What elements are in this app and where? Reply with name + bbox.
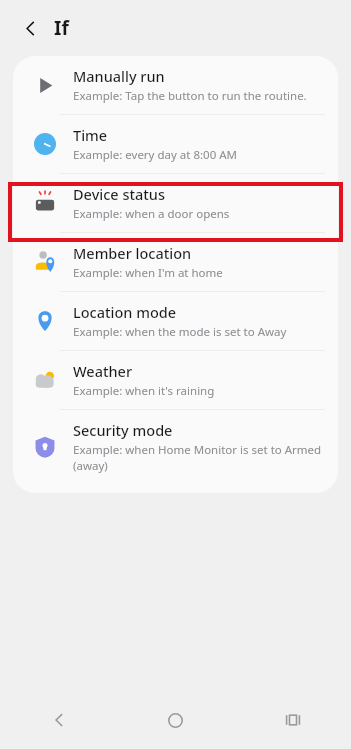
button[interactable]: Recents: [234, 691, 351, 749]
button[interactable]: Manually run: [13, 56, 338, 114]
staticText: Example: Tap the button to run the routi…: [73, 88, 307, 104]
staticText: Example: when a door opens: [73, 206, 230, 222]
button[interactable]: Location mode: [13, 292, 338, 350]
button[interactable]: Member location: [13, 233, 338, 291]
staticText: Member location: [73, 243, 192, 263]
button[interactable]: Security mode: [13, 410, 338, 493]
staticText: Security mode: [73, 420, 173, 440]
button[interactable]: Device status: [13, 174, 338, 232]
staticText: Example: when the mode is set to Away: [73, 324, 287, 340]
button[interactable]: Weather: [13, 351, 338, 409]
button[interactable]: Back: [0, 691, 117, 749]
staticText: Weather: [73, 361, 133, 381]
staticText: Example: when I'm at home: [73, 265, 223, 281]
button[interactable]: Back: [13, 11, 47, 45]
staticText: Example: every day at 8:00 AM: [73, 147, 238, 163]
staticText: Manually run: [73, 66, 165, 86]
staticText: Time: [73, 125, 108, 145]
staticText: Example: when Home Monitor is set to Arm…: [73, 442, 322, 473]
staticText: Device status: [73, 184, 165, 204]
button[interactable]: Home: [117, 691, 234, 749]
staticText: If: [54, 15, 69, 41]
button[interactable]: Time: [13, 115, 338, 173]
staticText: Location mode: [73, 302, 177, 322]
staticText: Example: when it's raining: [73, 383, 215, 399]
